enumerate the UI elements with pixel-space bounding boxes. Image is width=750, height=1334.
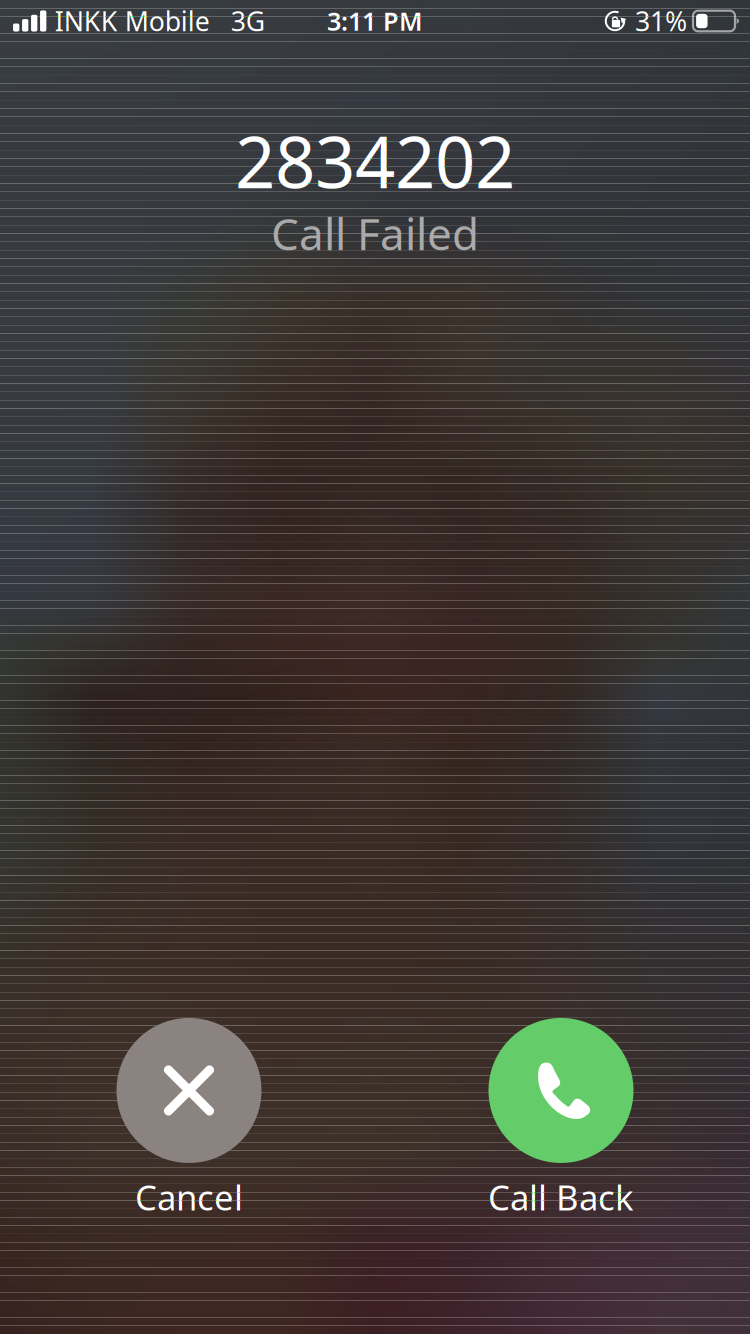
staticText: Cancel (135, 1174, 243, 1220)
staticText: 2834202 (235, 114, 515, 208)
staticText: 31% (635, 3, 687, 39)
staticText: Call Back (488, 1174, 634, 1220)
staticText: 3G (231, 3, 265, 39)
button[interactable]: Call Back (461, 1018, 661, 1220)
staticText: INKK Mobile (55, 3, 210, 39)
button[interactable]: Cancel (89, 1018, 289, 1220)
staticText: 3:11 PM (327, 4, 423, 38)
staticText: Call Failed (271, 204, 479, 262)
